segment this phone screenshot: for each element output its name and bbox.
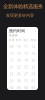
staticText: › <box>35 28 36 34</box>
staticText: 05 <box>31 86 35 90</box>
staticText: 12 <box>31 45 35 49</box>
staticText: 今天 <box>9 39 15 42</box>
staticText: 17 <box>10 59 14 62</box>
staticText: 03 <box>17 86 21 90</box>
staticText: 21 <box>10 66 14 69</box>
staticText: 19 <box>24 59 28 62</box>
staticText: 11 <box>24 45 28 49</box>
staticText: 明天 <box>16 39 22 42</box>
staticText: 26 <box>17 72 21 76</box>
staticText: 28 <box>31 72 35 76</box>
staticText: 请选择 <box>9 34 18 37</box>
staticText: 02 <box>10 86 14 90</box>
staticText: 全新体验精选服务 <box>3 3 43 10</box>
staticText: 18 <box>17 59 21 62</box>
staticText: 09 <box>10 45 14 49</box>
staticText: 23 <box>24 66 28 69</box>
staticText: 27 <box>24 72 28 76</box>
staticText: 10 <box>17 45 21 49</box>
staticText: 04 <box>24 86 28 90</box>
staticText: 周三 <box>23 39 29 42</box>
staticText: 20 <box>31 59 35 62</box>
staticText: 25 <box>10 72 14 76</box>
staticText: 30 <box>17 79 21 83</box>
staticText: 24 <box>31 66 35 69</box>
staticText: 16 <box>31 52 35 55</box>
staticText: 31 <box>24 79 28 83</box>
staticText: 13 <box>10 52 14 55</box>
staticText: 29 <box>10 79 14 83</box>
staticText: 15 <box>24 52 28 55</box>
staticText: 14 <box>17 52 21 55</box>
staticText: 22 <box>17 66 21 69</box>
staticText: 预约时间 <box>9 28 25 33</box>
staticText: 周四 <box>30 39 36 42</box>
staticText: 发现更多好内容 <box>6 13 34 18</box>
staticText: 01 <box>31 79 35 83</box>
